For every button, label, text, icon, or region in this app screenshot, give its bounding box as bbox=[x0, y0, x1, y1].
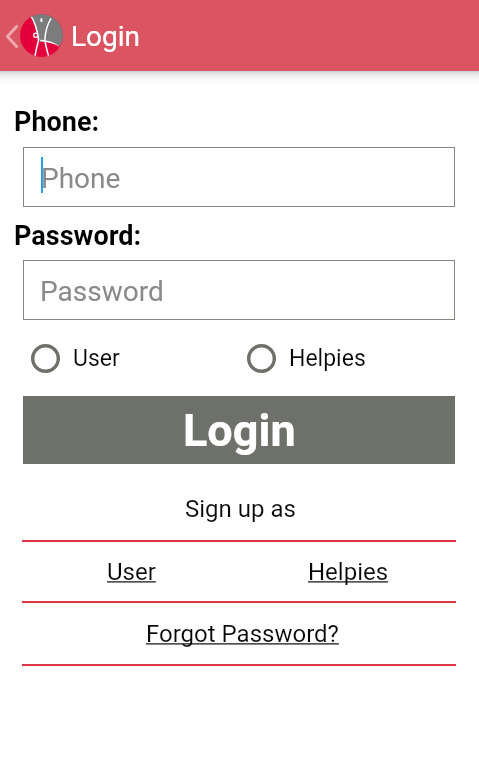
staticText: User bbox=[107, 558, 156, 586]
button[interactable]: Password bbox=[23, 260, 455, 320]
staticText: Password: bbox=[14, 220, 142, 252]
staticText: Login bbox=[183, 404, 296, 457]
staticText: Login bbox=[71, 20, 141, 53]
staticText: Sign up as bbox=[185, 495, 296, 523]
button[interactable]: Phone bbox=[23, 147, 455, 207]
staticText: Phone: bbox=[14, 106, 100, 138]
staticText: Helpies bbox=[308, 558, 389, 586]
button[interactable]: Forgot Password? bbox=[146, 620, 339, 648]
staticText: Phone bbox=[41, 162, 121, 195]
staticText: User bbox=[73, 345, 120, 372]
staticText: Forgot Password? bbox=[146, 620, 339, 648]
button[interactable]: Helpies bbox=[308, 558, 389, 586]
staticText: Helpies bbox=[289, 345, 366, 372]
button[interactable]: Helpies bbox=[247, 344, 366, 373]
button[interactable]: User bbox=[31, 344, 120, 373]
button[interactable]: Login bbox=[23, 396, 455, 464]
staticText: Password bbox=[40, 275, 164, 308]
button[interactable]: Back bbox=[0, 18, 24, 54]
button[interactable]: User bbox=[107, 558, 156, 586]
